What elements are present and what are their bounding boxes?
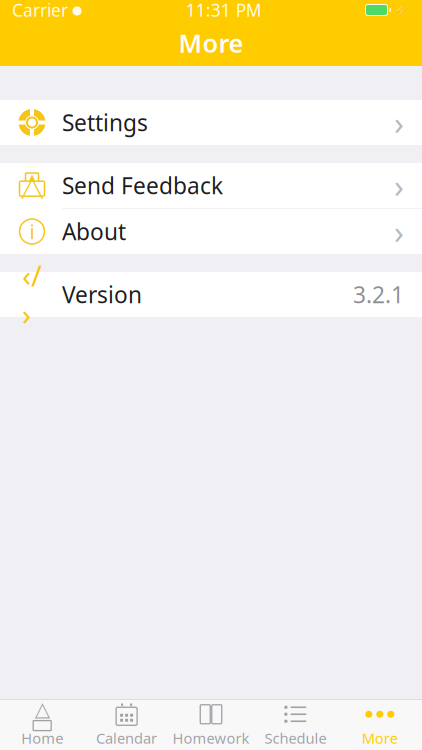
button[interactable]: Schedule — [253, 700, 338, 750]
staticText: i — [29, 218, 34, 245]
staticText: › — [394, 101, 404, 144]
staticText: More — [362, 728, 398, 748]
staticText: More — [178, 26, 243, 60]
staticText: 3.2.1 — [353, 279, 404, 309]
button[interactable]: △ — [0, 700, 84, 750]
staticText: Version — [62, 279, 142, 309]
button[interactable]: ▲ — [0, 163, 422, 208]
button[interactable]: Calendar — [84, 700, 169, 750]
staticText: ▲ — [29, 172, 35, 182]
button[interactable]: Settings — [0, 100, 422, 145]
button[interactable]: Homework — [169, 700, 253, 750]
staticText: ⚡ — [393, 2, 410, 18]
staticText: ● — [68, 3, 82, 17]
staticText: △ — [35, 698, 50, 721]
staticText: Calendar — [96, 728, 157, 748]
staticText: Home — [21, 728, 63, 748]
button[interactable]: More — [338, 700, 422, 750]
staticText: Homework — [172, 728, 249, 748]
staticText: Settings — [62, 107, 148, 137]
staticText: › — [394, 210, 404, 253]
staticText: Carrier — [12, 0, 68, 21]
staticText: › — [394, 164, 404, 207]
button[interactable]: i — [0, 209, 422, 254]
staticText: ╱╲ — [22, 179, 42, 198]
button[interactable]: ‹/› — [0, 272, 422, 317]
staticText: 11:31 PM — [186, 0, 262, 21]
staticText: ‹/› — [22, 255, 42, 333]
staticText: About — [62, 216, 126, 246]
staticText: Schedule — [264, 728, 326, 748]
staticText: Send Feedback — [62, 170, 223, 200]
